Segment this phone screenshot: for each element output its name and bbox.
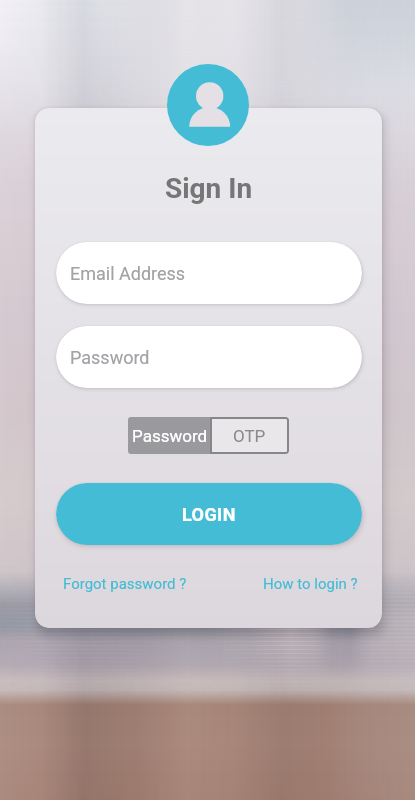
staticText: Password — [132, 426, 208, 446]
button[interactable]: LOGIN — [56, 483, 362, 545]
staticText: Sign In — [35, 172, 382, 205]
staticText: Password — [70, 347, 150, 368]
button[interactable]: Password — [56, 326, 362, 388]
button[interactable]: Profile avatar — [167, 64, 249, 146]
button[interactable]: Forgot password ? — [63, 575, 187, 593]
staticText: LOGIN — [182, 504, 236, 525]
button[interactable]: Password — [128, 417, 210, 454]
staticText: How to login ? — [263, 575, 358, 593]
staticText: Forgot password ? — [63, 575, 187, 593]
staticText: OTP — [233, 426, 266, 446]
button[interactable]: Email Address — [56, 242, 362, 304]
button[interactable]: How to login ? — [263, 575, 358, 593]
staticText: Email Address — [70, 263, 186, 284]
button[interactable]: OTP — [210, 417, 289, 454]
